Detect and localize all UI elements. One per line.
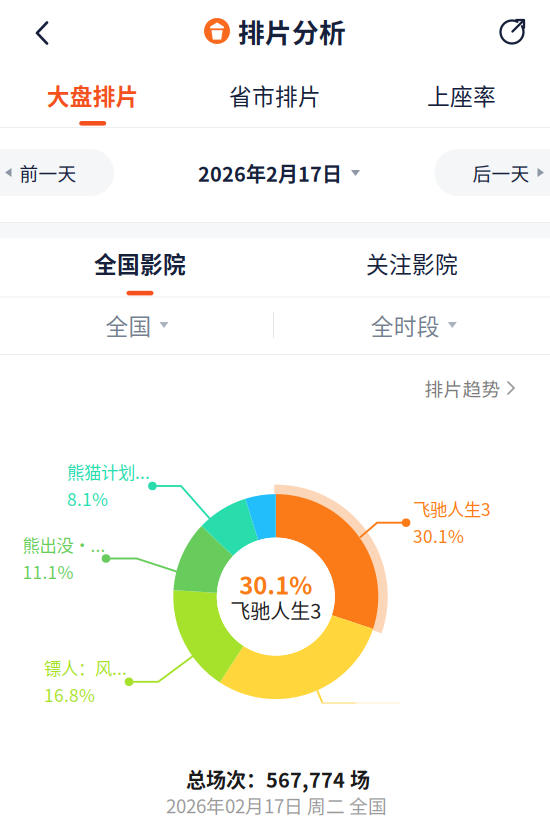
staticText: 全国 — [105, 309, 151, 341]
button[interactable]: Share — [486, 4, 539, 59]
button[interactable]: 全时段 — [345, 295, 483, 355]
staticText: 全国影院 — [94, 247, 186, 279]
staticText: 2026年02月17日 周二 全国 — [166, 791, 387, 818]
staticText: 熊猫计划... — [67, 459, 150, 484]
staticText: 排片分析 — [238, 12, 346, 50]
staticText: 关注影院 — [366, 247, 458, 279]
staticText: 30.1% — [239, 567, 312, 601]
staticText: 总场次：567,774 场 — [186, 764, 370, 793]
button[interactable]: 2026年2月17日 — [198, 150, 360, 195]
staticText: 前一天 — [19, 159, 76, 186]
button[interactable]: 上座率 — [391, 62, 531, 128]
staticText: 8.1% — [67, 486, 108, 511]
button[interactable]: 全国 — [79, 295, 194, 355]
staticText: 16.8% — [44, 682, 95, 707]
staticText: 飞驰人生3 — [230, 595, 321, 624]
staticText: 排片趋势 — [424, 374, 500, 401]
staticText: 30.1% — [413, 523, 464, 548]
button[interactable]: 排片趋势 — [414, 366, 525, 409]
staticText: 大盘排片 — [47, 79, 139, 111]
staticText: 熊出没·... — [23, 532, 106, 557]
staticText: 全时段 — [371, 309, 440, 341]
staticText: 11.1% — [23, 559, 74, 584]
button[interactable]: 省市排片 — [205, 62, 345, 128]
staticText: 镖人：风... — [44, 655, 127, 680]
button[interactable]: 前一天 — [0, 149, 114, 196]
button[interactable]: 后一天 — [435, 149, 550, 196]
button[interactable]: 全国影院 — [70, 235, 210, 295]
button[interactable]: 大盘排片 — [23, 62, 163, 128]
staticText: 上座率 — [427, 79, 496, 111]
button[interactable]: Back — [19, 5, 65, 60]
staticText: 后一天 — [472, 159, 529, 186]
button[interactable]: 关注影院 — [342, 235, 482, 295]
staticText: 飞驰人生3 — [413, 496, 491, 521]
staticText: 2026年2月17日 — [198, 158, 342, 187]
staticText: 省市排片 — [229, 79, 321, 111]
